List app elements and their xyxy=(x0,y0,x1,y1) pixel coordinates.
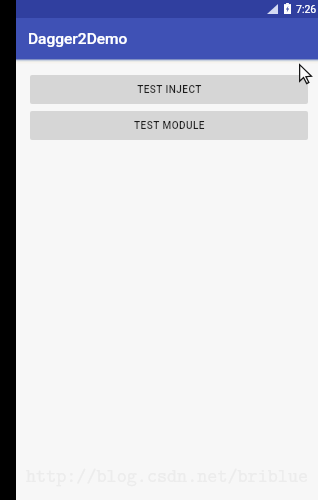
staticText: TEST INJECT xyxy=(137,84,202,96)
staticText: TEST MODULE xyxy=(134,120,205,132)
staticText: 7:26 xyxy=(296,3,317,15)
staticText: http://blog.csdn.net/briblue xyxy=(26,462,309,488)
staticText: Dagger2Demo xyxy=(28,30,128,48)
button[interactable]: TEST INJECT xyxy=(30,75,308,104)
button[interactable]: TEST MODULE xyxy=(30,111,308,140)
